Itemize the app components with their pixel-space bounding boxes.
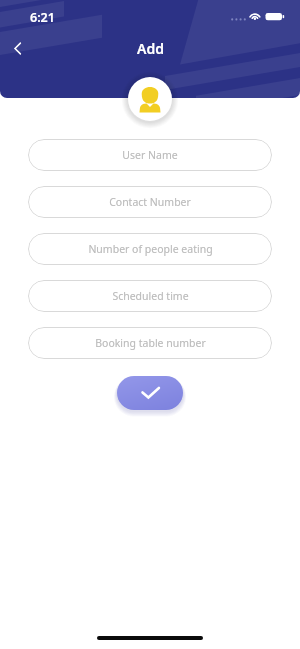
staticText: User Name bbox=[122, 148, 178, 162]
button[interactable]: Scheduled time bbox=[28, 280, 272, 312]
staticText: Scheduled time bbox=[112, 289, 189, 303]
staticText: Number of people eating bbox=[88, 242, 213, 256]
staticText: Add bbox=[137, 39, 164, 58]
staticText: Contact Number bbox=[109, 195, 191, 209]
staticText: Booking table number bbox=[95, 336, 206, 350]
button[interactable]: Number of people eating bbox=[28, 233, 272, 265]
button[interactable]: Contact Number bbox=[28, 186, 272, 218]
button[interactable]: Confirm bbox=[117, 376, 183, 410]
staticText: 6:21 bbox=[30, 9, 55, 26]
button[interactable]: Booking table number bbox=[28, 327, 272, 359]
button[interactable]: Back bbox=[4, 35, 31, 62]
button[interactable]: User Name bbox=[28, 139, 272, 171]
